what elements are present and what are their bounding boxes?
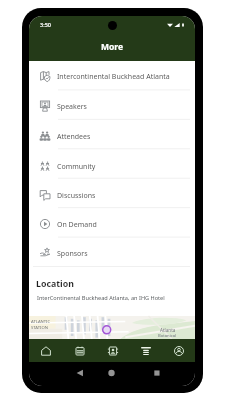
button[interactable]: Account bbox=[162, 339, 195, 362]
staticText: Atlanta bbox=[160, 327, 176, 333]
button[interactable]: Home bbox=[29, 339, 63, 362]
button[interactable]: More bbox=[129, 339, 162, 362]
staticText: Botanical bbox=[158, 333, 177, 339]
staticText: Sponsors bbox=[57, 249, 88, 259]
staticText: On Demand bbox=[57, 220, 97, 230]
button[interactable]: Schedule bbox=[63, 339, 96, 362]
button[interactable]: Intercontinental Buckhead Atlanta bbox=[29, 61, 195, 91]
button[interactable]: Attendees bbox=[29, 121, 195, 151]
button[interactable]: Discussions bbox=[29, 180, 195, 209]
staticText: ATLANTIC STATION bbox=[31, 319, 51, 330]
staticText: More bbox=[101, 41, 124, 53]
staticText: Intercontinental Buckhead Atlanta bbox=[57, 72, 170, 82]
staticText: InterContinental Buckhead Atlanta, an IH… bbox=[37, 294, 165, 302]
staticText: Discussions bbox=[57, 191, 96, 201]
button[interactable]: Speakers bbox=[29, 91, 195, 121]
button[interactable]: On Demand bbox=[29, 209, 195, 238]
button[interactable]: Contacts bbox=[96, 339, 129, 362]
staticText: 3:50 bbox=[40, 21, 51, 28]
staticText: Attendees bbox=[57, 132, 91, 142]
button[interactable]: Community bbox=[29, 151, 195, 180]
staticText: Community bbox=[57, 162, 96, 172]
button[interactable]: Sponsors bbox=[29, 238, 195, 267]
staticText: Speakers bbox=[57, 102, 87, 112]
staticText: Location bbox=[36, 278, 74, 290]
